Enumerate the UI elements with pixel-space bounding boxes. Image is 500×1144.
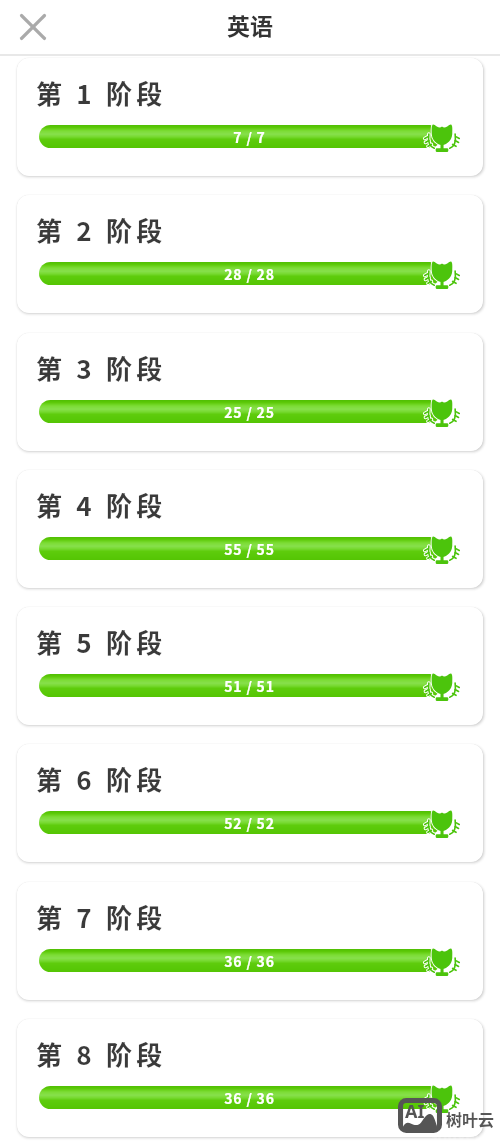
button[interactable]: 第 8 阶段: [17, 1019, 483, 1137]
staticText: 第 3 阶段: [36, 349, 167, 387]
staticText: 28 / 28: [224, 264, 275, 284]
button[interactable]: 第 3 阶段: [17, 333, 483, 451]
staticText: 7 / 7: [233, 127, 266, 147]
button[interactable]: 第 7 阶段: [17, 882, 483, 1000]
button[interactable]: 第 6 阶段: [17, 744, 483, 862]
staticText: 第 6 阶段: [36, 760, 167, 798]
staticText: 36 / 36: [224, 1088, 275, 1108]
button[interactable]: Close: [9, 3, 57, 51]
staticText: 第 1 阶段: [36, 74, 167, 112]
staticText: 第 2 阶段: [36, 211, 167, 249]
button[interactable]: 第 1 阶段: [17, 58, 483, 176]
staticText: 第 7 阶段: [36, 898, 167, 936]
staticText: AI: [405, 1099, 425, 1124]
staticText: 第 4 阶段: [36, 486, 167, 524]
staticText: 英语: [227, 8, 273, 41]
staticText: 第 8 阶段: [36, 1035, 167, 1073]
staticText: 52 / 52: [224, 813, 275, 833]
staticText: 25 / 25: [224, 402, 275, 422]
button[interactable]: 第 4 阶段: [17, 470, 483, 588]
button[interactable]: 第 5 阶段: [17, 607, 483, 725]
staticText: 第 5 阶段: [36, 623, 167, 661]
staticText: shuyeyun: [430, 1125, 500, 1144]
button[interactable]: 第 2 阶段: [17, 195, 483, 313]
staticText: 55 / 55: [224, 539, 275, 559]
staticText: 36 / 36: [224, 951, 275, 971]
staticText: 51 / 51: [224, 676, 275, 696]
staticText: 树叶云: [446, 1107, 495, 1130]
